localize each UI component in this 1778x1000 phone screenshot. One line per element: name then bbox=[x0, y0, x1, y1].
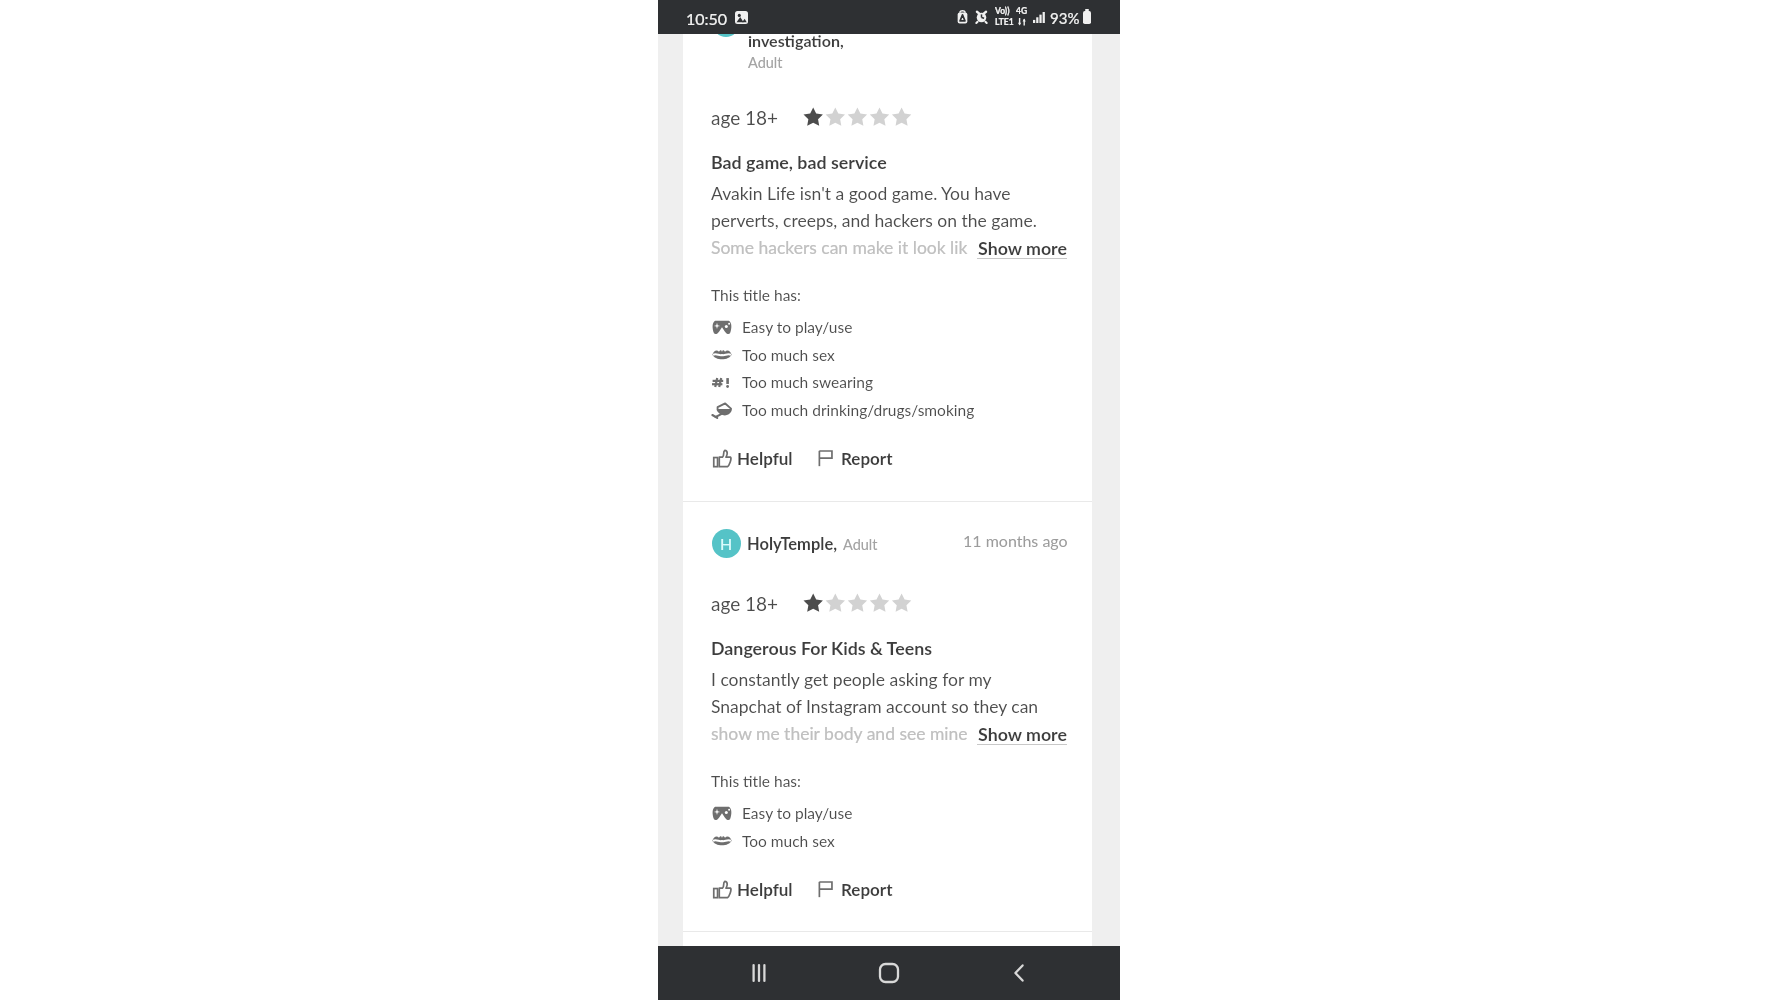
staticText: 10:50 bbox=[686, 9, 728, 28]
staticText: Report bbox=[841, 879, 893, 899]
staticText: This title has: bbox=[711, 286, 801, 305]
staticText: show me their body and see mine bbox=[711, 723, 968, 744]
staticText: Too much swearing bbox=[742, 373, 873, 392]
button[interactable]: Home bbox=[873, 957, 905, 989]
staticText: perverts, creeps, and hackers on the gam… bbox=[711, 210, 1037, 231]
staticText: Dangerous For Kids & Teens bbox=[711, 637, 933, 658]
staticText: Easy to play/use bbox=[742, 318, 853, 337]
staticText: LTE1 bbox=[995, 17, 1014, 27]
staticText: Some hackers can make it look lik bbox=[711, 237, 968, 258]
staticText: 11 months ago bbox=[963, 531, 1068, 550]
staticText: Too much sex bbox=[742, 832, 835, 851]
button[interactable]: Report bbox=[811, 874, 901, 904]
staticText: Too much sex bbox=[742, 346, 835, 365]
staticText: Too much drinking/drugs/smoking bbox=[742, 401, 975, 420]
staticText: Helpful bbox=[737, 879, 793, 899]
staticText: age 18+ bbox=[711, 106, 779, 129]
button[interactable]: Report bbox=[811, 443, 901, 473]
button[interactable]: Show more bbox=[977, 235, 1069, 261]
button[interactable]: Review by HolyTemple: Dangerous For Kids… bbox=[683, 502, 1092, 931]
staticText: Report bbox=[841, 448, 893, 468]
staticText: This title has: bbox=[711, 772, 801, 791]
button[interactable]: Reviewer avatar bbox=[713, 11, 739, 37]
staticText: Adult bbox=[843, 536, 878, 553]
staticText: 4G bbox=[1016, 6, 1028, 16]
button[interactable]: Recent apps bbox=[743, 957, 775, 989]
staticText: HolyTemple, bbox=[747, 534, 838, 554]
staticText: age 18+ bbox=[711, 592, 779, 615]
staticText: H bbox=[720, 534, 733, 553]
button[interactable]: Show more bbox=[977, 721, 1069, 747]
staticText: Adult bbox=[748, 54, 783, 71]
button[interactable]: Helpful bbox=[707, 443, 801, 473]
staticText: 93% bbox=[1050, 9, 1080, 27]
staticText: Bad game, bad service bbox=[711, 151, 887, 172]
staticText: I constantly get people asking for my bbox=[711, 669, 992, 690]
staticText: Vo)) bbox=[995, 6, 1010, 16]
staticText: Easy to play/use bbox=[742, 804, 853, 823]
button[interactable]: Review by investigation: Bad game, bad s… bbox=[683, 34, 1092, 501]
staticText: Show more bbox=[978, 723, 1068, 744]
staticText: Show more bbox=[978, 237, 1068, 258]
button[interactable]: Helpful bbox=[707, 874, 801, 904]
button[interactable]: H bbox=[712, 527, 878, 558]
staticText: investigation, bbox=[748, 31, 844, 50]
staticText: Helpful bbox=[737, 448, 793, 468]
button[interactable]: Back bbox=[1003, 957, 1035, 989]
staticText: Snapchat of Instagram account so they ca… bbox=[711, 696, 1039, 717]
staticText: Avakin Life isn't a good game. You have bbox=[711, 183, 1011, 204]
